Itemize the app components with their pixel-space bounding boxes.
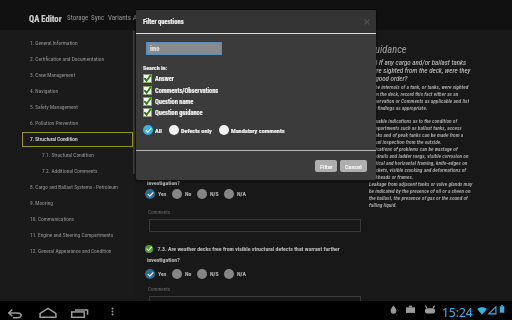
button[interactable]: 2. Certification and Documentation: [0, 51, 135, 67]
button[interactable]: 11. Engine and Steering Compartments: [0, 227, 135, 243]
button[interactable]: About: [133, 0, 150, 30]
staticText: Question name: [155, 98, 194, 106]
button[interactable]: Sync: [91, 0, 105, 30]
button[interactable]: Comments/Observations: [143, 86, 219, 95]
staticText: 7.6 If any cargo and/or ballast tanks we…: [369, 59, 471, 83]
staticText: 15:24: [442, 304, 473, 320]
staticText: imo: [150, 45, 160, 53]
staticText: Mandatory comments: [231, 127, 285, 134]
button[interactable]: 8. Cargo and Ballast Systems - Petroleum: [0, 179, 135, 195]
button[interactable]: 1. General Information: [0, 35, 135, 51]
staticText: Search in:: [143, 64, 168, 71]
staticText: 12. General Appearance and Condition: [30, 248, 112, 254]
staticText: Comments: [148, 209, 171, 215]
button[interactable]: Close: [362, 17, 372, 27]
button[interactable]: More options: [105, 304, 120, 319]
button[interactable]: 7. Structural Condition: [0, 131, 135, 147]
staticText: Comments: [148, 286, 171, 292]
button[interactable]: 6. Pollution Prevention: [0, 115, 135, 131]
staticText: 10. Communications: [30, 216, 74, 222]
button[interactable]: Mandatory comments: [219, 125, 285, 135]
button[interactable]: [149, 296, 361, 309]
button[interactable]: Question name: [143, 97, 194, 106]
staticText: Cancel: [345, 163, 362, 170]
staticText: 5. Safety Management: [30, 104, 78, 110]
staticText: Guidance: [369, 43, 407, 55]
button[interactable]: Home: [39, 304, 57, 320]
button[interactable]: 5. Safety Management: [0, 99, 135, 115]
staticText: 4. Navigation: [30, 88, 59, 94]
button[interactable]: Filter: [315, 160, 337, 172]
staticText: Yes: [158, 271, 167, 278]
button[interactable]: [149, 219, 361, 232]
button[interactable]: Question guidance: [143, 108, 203, 117]
button[interactable]: Yes: [145, 189, 167, 199]
staticText: Sync: [91, 14, 105, 22]
staticText: 1. General Information: [30, 40, 78, 46]
button[interactable]: Back: [7, 304, 23, 320]
staticText: 7.1. Structural Condition: [42, 152, 94, 158]
button[interactable]: 9. Mooring: [0, 195, 135, 211]
button[interactable]: N/S: [197, 269, 219, 279]
staticText: Yes: [158, 191, 167, 198]
button[interactable]: No: [172, 269, 192, 279]
staticText: Filter questions: [143, 18, 184, 26]
staticText: All: [155, 127, 162, 134]
staticText: QA Editor: [29, 14, 62, 24]
button[interactable]: 10. Communications: [0, 211, 135, 227]
staticText: 2. Certification and Documentation: [30, 56, 105, 62]
staticText: No: [185, 271, 192, 278]
button[interactable]: 7.2. Additional Comments: [0, 163, 135, 179]
staticText: Variants: [108, 14, 131, 22]
staticText: N/A: [237, 271, 246, 278]
staticText: N/A: [237, 191, 246, 198]
button[interactable]: 4. Navigation: [0, 83, 135, 99]
staticText: 7.2. Additional Comments: [42, 168, 98, 174]
staticText: If the internals of a tank, or tanks, we…: [369, 84, 476, 111]
button[interactable]: All: [143, 125, 162, 135]
button[interactable]: Recents: [71, 304, 89, 320]
staticText: 6. Pollution Prevention: [30, 120, 79, 126]
staticText: About: [133, 14, 150, 22]
button[interactable]: Cancel: [340, 160, 367, 172]
staticText: 8. Cargo and Ballast Systems - Petroleum: [30, 184, 118, 190]
button[interactable]: imo: [146, 42, 222, 55]
staticText: Filter: [320, 163, 333, 170]
button[interactable]: Storage: [67, 0, 89, 30]
button[interactable]: Variants: [108, 0, 131, 30]
staticText: 7. Structural Condition: [30, 136, 78, 142]
button[interactable]: Yes: [145, 269, 167, 279]
staticText: Valuable indications as to the condition…: [369, 118, 476, 145]
staticText: investigation?: [147, 180, 180, 187]
button[interactable]: 7.1. Structural Condition: [0, 147, 135, 163]
staticText: Indications of problems can be wastage o…: [369, 146, 476, 180]
staticText: 9. Mooring: [30, 200, 53, 206]
staticText: Leakage from adjacent tanks or valve gla…: [369, 181, 476, 208]
button[interactable]: N/A: [224, 269, 246, 279]
button[interactable]: N/A: [224, 189, 246, 199]
staticText: Comments/Observations: [155, 87, 219, 95]
staticText: Question guidance: [155, 109, 203, 117]
button[interactable]: Answer: [143, 74, 174, 83]
button[interactable]: No: [172, 189, 192, 199]
staticText: Answer: [155, 75, 174, 83]
staticText: 3. Crew Management: [30, 72, 76, 78]
button[interactable]: Defects only: [169, 125, 212, 135]
staticText: N/S: [210, 191, 219, 198]
button[interactable]: 3. Crew Management: [0, 67, 135, 83]
staticText: Defects only: [181, 127, 212, 134]
button[interactable]: 12. General Appearance and Condition: [0, 243, 135, 259]
staticText: N/S: [210, 271, 219, 278]
staticText: 11. Engine and Steering Compartments: [30, 232, 114, 238]
button[interactable]: N/S: [197, 189, 219, 199]
staticText: No: [185, 191, 192, 198]
staticText: 7.3. Are weather decks free from visible…: [147, 246, 355, 264]
staticText: Storage: [67, 14, 89, 22]
